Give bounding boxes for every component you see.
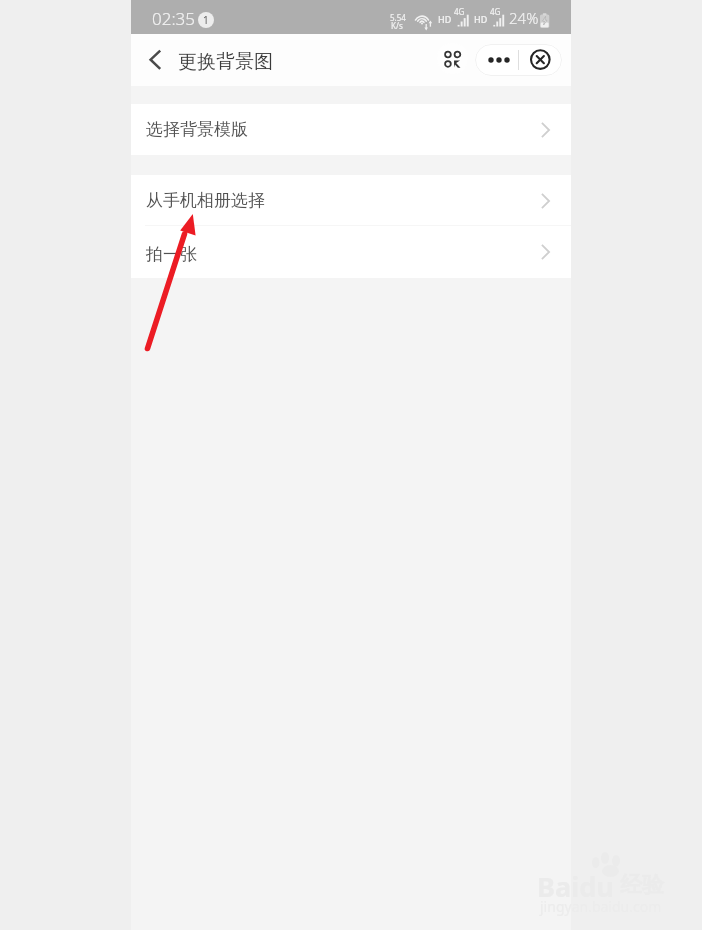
button[interactable]: Close bbox=[519, 44, 562, 76]
staticText: 4G bbox=[454, 6, 465, 17]
staticText: HD bbox=[438, 13, 452, 25]
staticText: 4G bbox=[490, 6, 501, 17]
staticText: Baidu bbox=[537, 868, 614, 905]
staticText: 1 bbox=[203, 13, 209, 27]
button[interactable]: 从手机相册选择 bbox=[131, 175, 571, 226]
staticText: 拍一张 bbox=[146, 244, 197, 265]
staticText: 选择背景模版 bbox=[146, 119, 248, 140]
staticText: 02:35 bbox=[152, 7, 195, 30]
staticText: 24% bbox=[509, 8, 539, 28]
staticText: 从手机相册选择 bbox=[146, 190, 265, 211]
button[interactable]: Mini program menu bbox=[437, 43, 468, 74]
button[interactable]: 拍一张 bbox=[131, 226, 571, 278]
staticText: HD bbox=[474, 13, 488, 25]
button[interactable]: 选择背景模版 bbox=[131, 104, 571, 155]
button[interactable]: Back bbox=[133, 38, 175, 82]
staticText: 更换背景图 bbox=[178, 50, 273, 74]
staticText: 5.54 bbox=[390, 12, 406, 23]
staticText: K/s bbox=[391, 20, 403, 31]
button[interactable]: More options bbox=[475, 44, 518, 76]
